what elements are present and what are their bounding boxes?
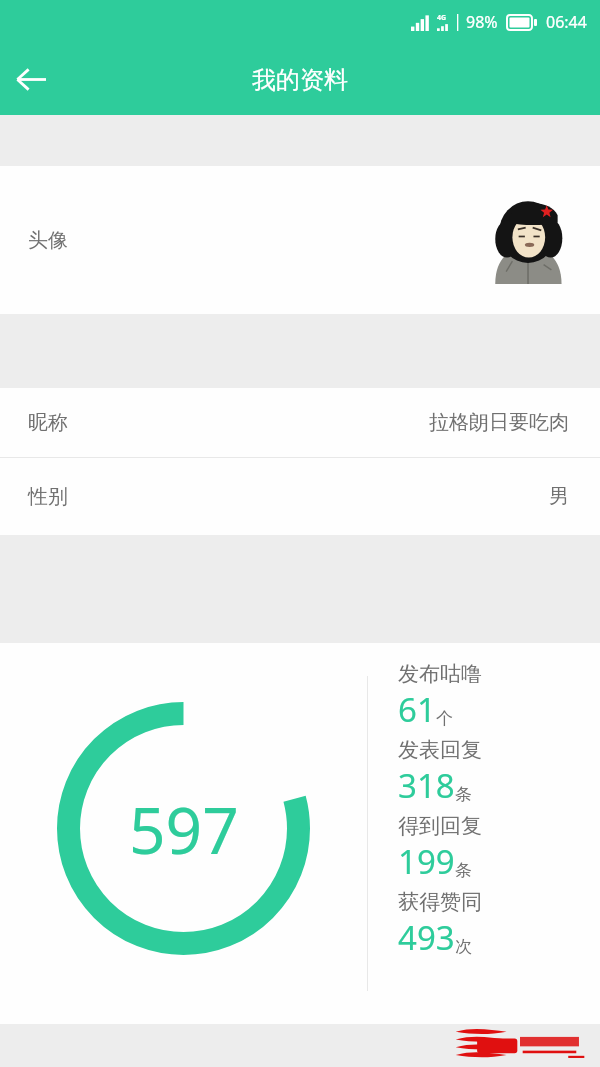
button[interactable]: Back — [0, 44, 62, 115]
staticText: 拉格朗日要吃肉 — [429, 410, 569, 435]
staticText: 4G — [437, 13, 447, 23]
staticText: 318 — [398, 763, 455, 808]
staticText: 获得赞同 — [398, 889, 482, 915]
staticText: 597 — [129, 786, 239, 873]
staticText: 昵称 — [28, 410, 68, 435]
button[interactable]: 性别 — [0, 458, 600, 535]
staticText: 98% — [466, 11, 498, 33]
staticText: 发表回复 — [398, 737, 482, 763]
staticText: 493 — [398, 915, 455, 960]
staticText: 我的资料 — [252, 65, 348, 95]
staticText: 条 — [455, 784, 472, 805]
staticText: 条 — [455, 860, 472, 881]
staticText: 199 — [398, 839, 455, 884]
button[interactable]: 头像 — [0, 166, 600, 314]
staticText: 次 — [455, 936, 472, 957]
staticText: 得到回复 — [398, 813, 482, 839]
staticText: 个 — [436, 708, 453, 729]
staticText: 61 — [398, 687, 436, 732]
staticText: 发布咕噜 — [398, 661, 482, 687]
staticText: 头像 — [28, 228, 68, 253]
staticText: 男 — [549, 484, 569, 509]
staticText: 06:44 — [546, 11, 587, 33]
staticText: 性别 — [28, 484, 68, 509]
button[interactable]: 昵称 — [0, 388, 600, 457]
